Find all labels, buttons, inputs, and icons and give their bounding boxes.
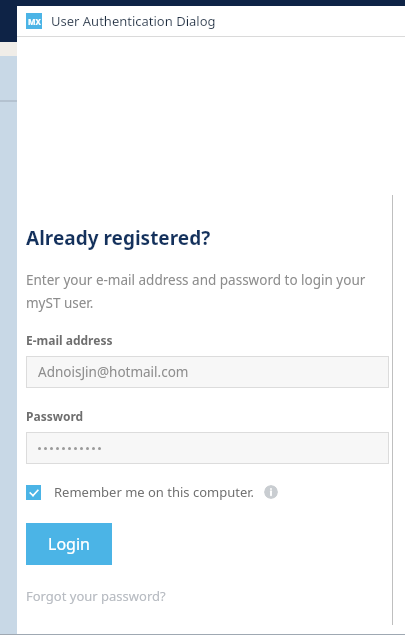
button[interactable]: Login xyxy=(26,523,112,565)
staticText: User Authentication Dialog xyxy=(51,12,216,30)
staticText: AdnoisJin@hotmail.com xyxy=(38,363,189,381)
staticText: Already registered? xyxy=(26,225,211,251)
button[interactable]: AdnoisJin@hotmail.com xyxy=(26,356,389,388)
button[interactable]: More information xyxy=(264,485,278,499)
button[interactable] xyxy=(26,432,389,464)
staticText: Enter your e-mail address and password t… xyxy=(26,271,366,312)
staticText: MX xyxy=(28,16,41,27)
staticText: Password xyxy=(26,408,84,424)
staticText: Login xyxy=(48,533,90,555)
button[interactable]: Remember me on this computer. xyxy=(26,481,278,503)
staticText: Remember me on this computer. xyxy=(54,483,255,501)
staticText: E-mail address xyxy=(26,332,113,348)
button[interactable]: Forgot your password? xyxy=(26,587,166,605)
